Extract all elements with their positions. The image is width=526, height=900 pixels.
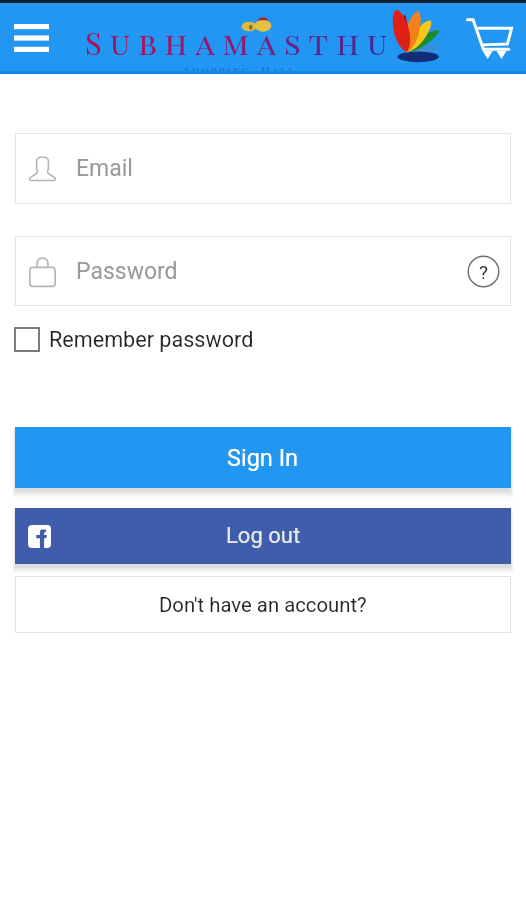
staticText: Subhamasthu xyxy=(85,21,396,62)
staticText: Email xyxy=(76,155,133,182)
button[interactable]: Email xyxy=(15,133,511,204)
button[interactable]: Menu xyxy=(2,12,60,64)
staticText: — Shopping Mall — xyxy=(163,63,318,76)
button[interactable]: Log out xyxy=(15,508,511,564)
staticText: Remember password xyxy=(49,327,254,352)
staticText: Password xyxy=(76,258,178,285)
staticText: Sign In xyxy=(227,444,299,472)
button[interactable]: Shopping cart xyxy=(458,7,520,69)
button[interactable]: Password xyxy=(15,236,511,306)
button[interactable]: Remember password xyxy=(15,321,254,357)
staticText: Log out xyxy=(226,523,301,549)
button[interactable]: Sign In xyxy=(15,427,511,488)
button[interactable]: Don't have an account? xyxy=(15,576,511,633)
staticText: Don't have an account? xyxy=(159,593,367,617)
button[interactable]: Help xyxy=(467,255,500,288)
staticText: ? xyxy=(479,261,488,283)
